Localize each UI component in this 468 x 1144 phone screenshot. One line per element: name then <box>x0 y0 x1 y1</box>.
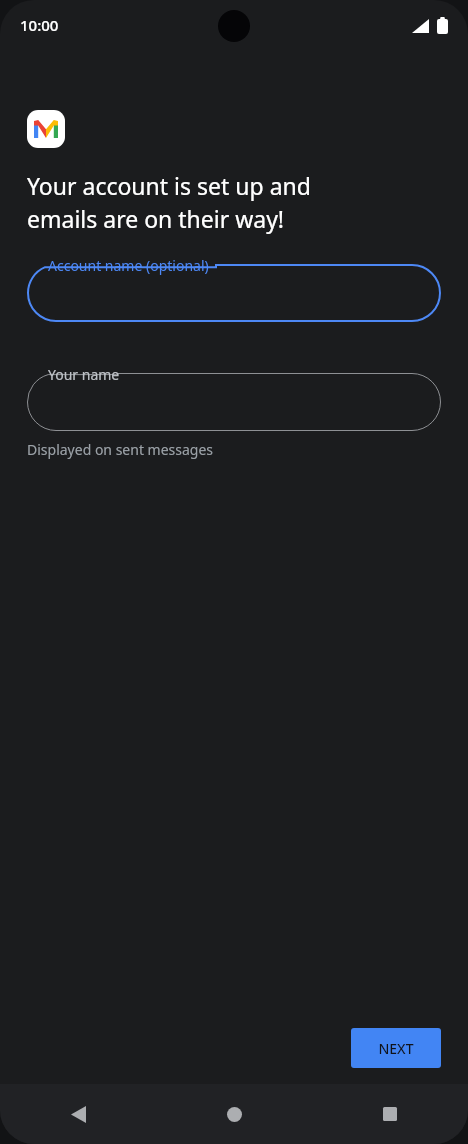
staticText: Your name <box>48 365 120 384</box>
button[interactable]: Home <box>156 1084 312 1144</box>
button[interactable]: Back <box>0 1084 156 1144</box>
button[interactable]: Your name <box>27 365 441 431</box>
staticText: Account name (optional) <box>48 256 209 275</box>
staticText: Your account is set up and emails are on… <box>27 170 311 235</box>
staticText: 10:00 <box>20 15 59 35</box>
staticText: Displayed on sent messages <box>27 440 214 459</box>
button[interactable]: Recent apps <box>312 1084 468 1144</box>
other: Gmail <box>27 110 65 148</box>
button[interactable]: Account name (optional) <box>27 256 441 322</box>
button[interactable]: NEXT <box>351 1028 441 1068</box>
staticText: NEXT <box>378 1039 414 1058</box>
